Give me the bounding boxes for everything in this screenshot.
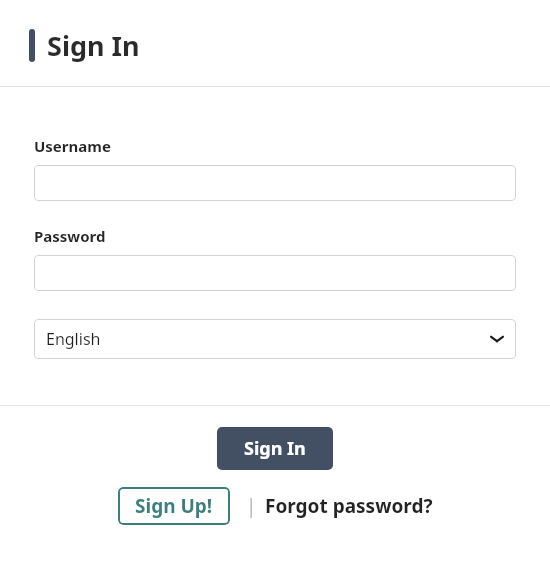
staticText: Password xyxy=(34,226,106,246)
button[interactable]: Forgot password? xyxy=(265,493,433,519)
staticText: Forgot password? xyxy=(265,493,433,519)
button[interactable]: Sign Up! xyxy=(118,487,230,525)
button[interactable]: English xyxy=(34,319,516,359)
staticText: English xyxy=(46,328,101,350)
staticText: Sign Up! xyxy=(135,493,213,519)
button[interactable] xyxy=(34,165,516,201)
staticText: | xyxy=(246,493,257,519)
button[interactable] xyxy=(34,255,516,291)
staticText: Sign In xyxy=(244,436,306,461)
staticText: Sign In xyxy=(47,27,140,64)
staticText: Username xyxy=(34,136,111,156)
button[interactable]: Sign In xyxy=(217,427,333,470)
